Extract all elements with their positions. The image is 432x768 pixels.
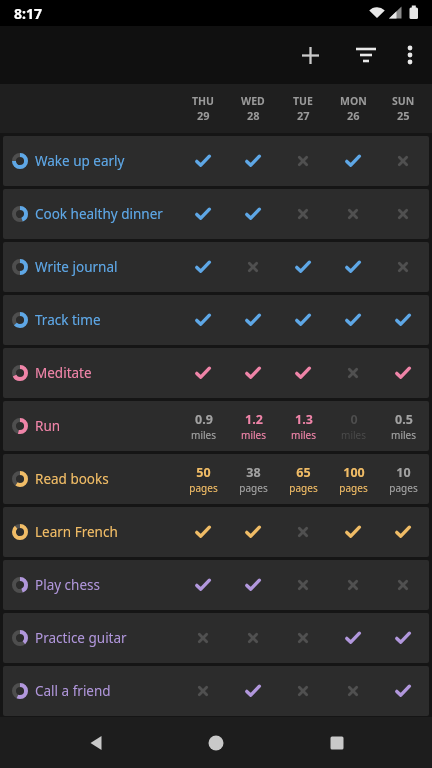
button[interactable] [278, 189, 328, 239]
button[interactable] [198, 725, 234, 761]
button[interactable] [328, 295, 378, 345]
button[interactable] [178, 613, 228, 663]
button[interactable]: 1.3 [278, 401, 328, 451]
button[interactable] [378, 560, 428, 610]
staticText: Call a friend [35, 682, 111, 700]
staticText: miles [191, 428, 216, 442]
button[interactable]: Read books [3, 454, 429, 504]
button[interactable] [228, 242, 278, 292]
button[interactable] [228, 613, 278, 663]
button[interactable]: 0.9 [178, 401, 228, 451]
button[interactable]: 0 [328, 401, 378, 451]
button[interactable]: 50 [178, 454, 228, 504]
button[interactable]: Call a friend [3, 666, 429, 716]
staticText: 25 [397, 108, 410, 123]
button[interactable]: 1.2 [228, 401, 278, 451]
button[interactable] [178, 560, 228, 610]
button[interactable] [278, 348, 328, 398]
staticText: SUN [392, 94, 415, 108]
button[interactable]: Run [3, 401, 429, 451]
button[interactable] [319, 725, 355, 761]
button[interactable] [328, 348, 378, 398]
button[interactable] [378, 189, 428, 239]
button[interactable] [378, 666, 428, 716]
button[interactable]: 10 [378, 454, 428, 504]
button[interactable] [278, 560, 328, 610]
button[interactable]: Learn French [3, 507, 429, 557]
button[interactable] [228, 136, 278, 186]
staticText: miles [291, 428, 316, 442]
button[interactable]: 100 [328, 454, 378, 504]
staticText: 10 [396, 464, 411, 481]
button[interactable]: Cook healthy dinner [3, 189, 429, 239]
button[interactable] [278, 507, 328, 557]
button[interactable]: Play chess [3, 560, 429, 610]
staticText: 8:17 [14, 4, 42, 23]
button[interactable]: Wake up early [3, 136, 429, 186]
button[interactable] [378, 295, 428, 345]
staticText: MON [340, 94, 367, 108]
button[interactable] [278, 242, 328, 292]
button[interactable] [288, 26, 332, 84]
staticText: pages [389, 481, 418, 495]
button[interactable] [278, 666, 328, 716]
staticText: miles [341, 428, 366, 442]
staticText: Wake up early [35, 152, 125, 170]
staticText: pages [189, 481, 218, 495]
button[interactable]: Track time [3, 295, 429, 345]
button[interactable] [328, 666, 378, 716]
button[interactable] [378, 613, 428, 663]
button[interactable] [378, 242, 428, 292]
staticText: Play chess [35, 576, 100, 594]
button[interactable]: Practice guitar [3, 613, 429, 663]
staticText: pages [239, 481, 268, 495]
button[interactable]: Meditate [3, 348, 429, 398]
button[interactable] [278, 613, 328, 663]
button[interactable] [178, 189, 228, 239]
button[interactable] [178, 242, 228, 292]
button[interactable]: 38 [228, 454, 278, 504]
button[interactable] [78, 725, 114, 761]
button[interactable] [328, 189, 378, 239]
staticText: Track time [35, 311, 101, 329]
staticText: Read books [35, 470, 109, 488]
button[interactable] [328, 613, 378, 663]
button[interactable]: Write journal [3, 242, 429, 292]
button[interactable] [344, 26, 388, 84]
staticText: Practice guitar [35, 629, 127, 647]
button[interactable] [178, 507, 228, 557]
button[interactable] [178, 136, 228, 186]
button[interactable] [228, 666, 278, 716]
button[interactable]: 0.5 [378, 401, 428, 451]
button[interactable] [228, 189, 278, 239]
button[interactable] [278, 136, 328, 186]
button[interactable] [228, 507, 278, 557]
staticText: 38 [246, 464, 261, 481]
staticText: Run [35, 417, 61, 435]
button[interactable] [328, 136, 378, 186]
button[interactable] [228, 295, 278, 345]
staticText: 28 [247, 108, 260, 123]
button[interactable]: 65 [278, 454, 328, 504]
button[interactable] [328, 242, 378, 292]
button[interactable] [378, 136, 428, 186]
button[interactable] [228, 560, 278, 610]
staticText: 50 [196, 464, 211, 481]
staticText: 29 [197, 108, 210, 123]
staticText: 0.9 [195, 411, 213, 428]
button[interactable] [328, 507, 378, 557]
button[interactable] [178, 666, 228, 716]
button[interactable] [228, 348, 278, 398]
button[interactable] [378, 348, 428, 398]
staticText: miles [241, 428, 266, 442]
button[interactable] [328, 560, 378, 610]
staticText: miles [391, 428, 416, 442]
staticText: Write journal [35, 258, 118, 276]
staticText: 1.2 [245, 411, 263, 428]
button[interactable] [378, 507, 428, 557]
staticText: 0 [350, 411, 358, 428]
button[interactable] [178, 295, 228, 345]
button[interactable] [388, 26, 432, 84]
button[interactable] [278, 295, 328, 345]
button[interactable] [178, 348, 228, 398]
